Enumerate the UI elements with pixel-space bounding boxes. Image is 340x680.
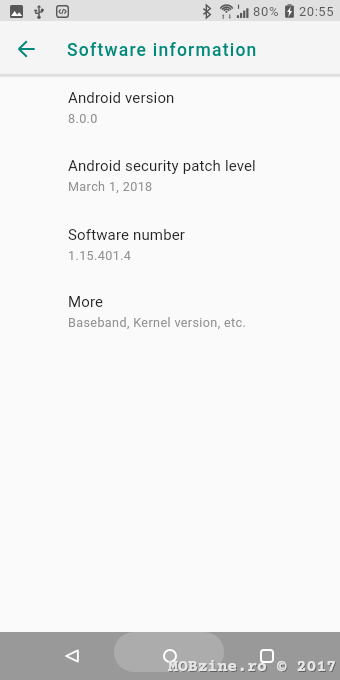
button[interactable]: Software number bbox=[0, 213, 340, 281]
button[interactable]: Back bbox=[52, 636, 92, 676]
staticText: More bbox=[68, 293, 104, 311]
staticText: 1.15.401.4 bbox=[68, 248, 132, 263]
staticText: 8.0.0 bbox=[68, 111, 98, 126]
staticText: Android security patch level bbox=[68, 157, 256, 175]
button[interactable]: Android version bbox=[0, 76, 340, 144]
staticText: 80% bbox=[253, 4, 280, 19]
staticText: MOBzine.ro © 2017 bbox=[169, 659, 338, 678]
staticText: Baseband, Kernel version, etc. bbox=[68, 315, 247, 330]
button[interactable]: More bbox=[0, 280, 340, 348]
button[interactable]: Navigate up bbox=[6, 29, 46, 69]
staticText: MOBzine.ro © 2017 bbox=[168, 658, 337, 677]
staticText: Software information bbox=[67, 40, 258, 61]
staticText: Software number bbox=[68, 226, 186, 244]
button[interactable]: Android security patch level bbox=[0, 144, 340, 212]
staticText: March 1, 2018 bbox=[68, 179, 153, 194]
staticText: Android version bbox=[68, 89, 175, 107]
button[interactable]: Recent apps bbox=[247, 636, 287, 676]
button[interactable]: Home bbox=[150, 636, 190, 676]
staticText: 20:55 bbox=[299, 4, 334, 19]
